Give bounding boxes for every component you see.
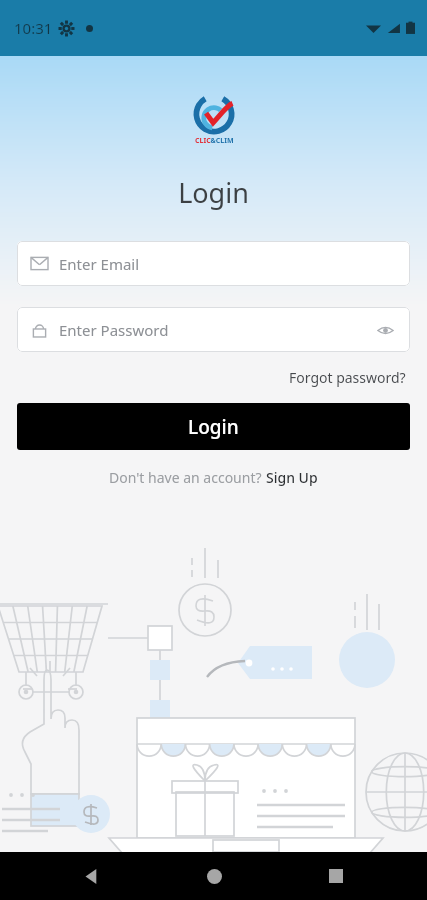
staticText: Enter Email	[59, 254, 140, 274]
staticText: Enter Password	[59, 320, 374, 340]
staticText: Forgot password?	[289, 368, 406, 387]
button[interactable]: Login	[17, 403, 410, 450]
staticText: Login	[188, 414, 239, 440]
staticText: Sign Up	[266, 468, 318, 487]
button[interactable]: Recent apps	[319, 859, 353, 893]
button[interactable]: Enter Email	[17, 241, 410, 286]
button[interactable]: Home	[197, 859, 231, 893]
button[interactable]: Don't have an account?	[103, 465, 324, 490]
staticText: 10:31	[14, 18, 53, 38]
staticText: Login	[0, 174, 427, 211]
button[interactable]: Enter Password	[17, 307, 410, 352]
button[interactable]: Show password	[374, 319, 396, 341]
button[interactable]: Back	[74, 859, 108, 893]
button[interactable]: Forgot password?	[285, 364, 410, 391]
staticText: CLIC&CLIM	[195, 136, 234, 146]
staticText: Don't have an account?	[109, 468, 266, 487]
